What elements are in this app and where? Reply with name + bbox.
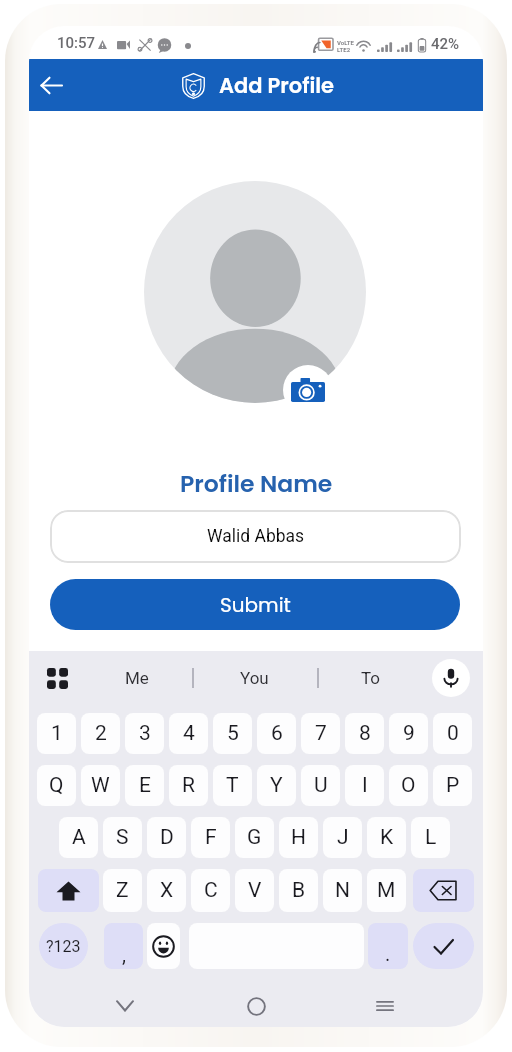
staticText: 3 <box>139 721 151 746</box>
button[interactable]: I <box>345 765 384 806</box>
staticText: 1 <box>51 721 63 746</box>
staticText: 10:57 <box>57 34 96 52</box>
button[interactable]: A <box>59 817 98 858</box>
button[interactable]: X <box>147 869 186 912</box>
staticText: 7 <box>315 721 327 746</box>
staticText: 9 <box>403 721 415 746</box>
staticText: B <box>292 878 306 903</box>
button[interactable]: D <box>147 817 186 858</box>
staticText: C <box>204 878 218 903</box>
staticText: Walid Abbas <box>207 526 305 547</box>
staticText: T <box>226 773 239 798</box>
button[interactable]: K <box>367 817 406 858</box>
button[interactable]: Walid Abbas <box>50 510 461 563</box>
button[interactable]: J <box>323 817 362 858</box>
button[interactable]: F <box>191 817 230 858</box>
staticText: W <box>91 773 110 798</box>
staticText: F <box>205 825 217 850</box>
staticText: , <box>122 943 126 966</box>
button[interactable]: . <box>368 923 408 969</box>
staticText: M <box>377 878 396 903</box>
button[interactable]: G <box>235 817 274 858</box>
staticText: To <box>361 668 381 688</box>
button[interactable]: V <box>235 869 274 912</box>
button[interactable]: Z <box>103 869 142 912</box>
staticText: O <box>401 773 416 798</box>
button[interactable]: 3 <box>125 713 164 754</box>
button[interactable]: 8 <box>345 713 384 754</box>
staticText: Z <box>116 878 129 903</box>
button[interactable]: S <box>103 817 142 858</box>
staticText: 42% <box>431 35 460 53</box>
button[interactable]: 9 <box>389 713 428 754</box>
staticText: S <box>116 825 129 850</box>
button[interactable]: L <box>411 817 450 858</box>
button[interactable]: , <box>104 923 143 969</box>
button[interactable]: Back <box>30 64 72 106</box>
button[interactable]: 1 <box>37 713 76 754</box>
button[interactable]: Home <box>237 987 275 1025</box>
staticText: ?123 <box>46 937 81 956</box>
staticText: E <box>139 773 151 798</box>
button[interactable]: 4 <box>169 713 208 754</box>
staticText: You <box>240 668 269 688</box>
button[interactable]: You <box>204 657 304 699</box>
button[interactable]: ?123 <box>39 923 88 969</box>
staticText: Submit <box>220 591 291 619</box>
button[interactable]: 2 <box>81 713 120 754</box>
staticText: Profile Name <box>180 467 333 500</box>
button[interactable]: Change profile photo <box>283 365 333 415</box>
staticText: VoLTE <box>337 39 354 46</box>
button[interactable]: 0 <box>433 713 472 754</box>
staticText: H <box>291 825 306 850</box>
button[interactable]: H <box>279 817 318 858</box>
button[interactable]: Back <box>106 987 144 1025</box>
staticText: L <box>425 825 437 850</box>
button[interactable]: 6 <box>257 713 296 754</box>
button[interactable]: 7 <box>301 713 340 754</box>
staticText: N <box>335 878 350 903</box>
button[interactable]: Submit <box>50 579 460 630</box>
button[interactable]: O <box>389 765 428 806</box>
staticText: LTE2 <box>337 46 351 53</box>
button[interactable]: Y <box>257 765 296 806</box>
button[interactable]: Keyboard layout <box>37 658 77 698</box>
staticText: V <box>248 878 262 903</box>
button[interactable]: R <box>169 765 208 806</box>
button[interactable]: Emoji <box>147 923 180 969</box>
staticText: X <box>160 878 174 903</box>
staticText: 0 <box>447 721 459 746</box>
button[interactable]: Q <box>37 765 76 806</box>
button[interactable]: E <box>125 765 164 806</box>
staticText: U <box>314 773 328 798</box>
button[interactable]: U <box>301 765 340 806</box>
button[interactable]: P <box>433 765 472 806</box>
button[interactable]: Me <box>87 657 187 699</box>
button[interactable]: To <box>321 657 421 699</box>
staticText: 2 <box>95 721 107 746</box>
button[interactable]: Voice input <box>432 659 470 697</box>
staticText: D <box>160 825 174 850</box>
button[interactable]: Enter <box>413 923 474 969</box>
staticText: G <box>247 825 262 850</box>
staticText: P <box>446 773 460 798</box>
button[interactable]: Backspace <box>413 869 474 912</box>
button[interactable]: T <box>213 765 252 806</box>
staticText: 6 <box>271 721 283 746</box>
staticText: Y <box>270 773 283 798</box>
button[interactable]: N <box>323 869 362 912</box>
staticText: Me <box>125 668 149 688</box>
staticText: A <box>72 825 86 850</box>
staticText: 8 <box>359 721 371 746</box>
button[interactable]: Shift <box>38 869 99 912</box>
button[interactable]: W <box>81 765 120 806</box>
button[interactable]: C <box>191 869 230 912</box>
button[interactable]: B <box>279 869 318 912</box>
button[interactable]: 5 <box>213 713 252 754</box>
staticText: 4 <box>183 721 195 746</box>
staticText: Add Profile <box>219 71 335 100</box>
staticText: I <box>362 773 368 798</box>
button[interactable]: Recent apps <box>366 987 404 1025</box>
button[interactable]: M <box>367 869 406 912</box>
